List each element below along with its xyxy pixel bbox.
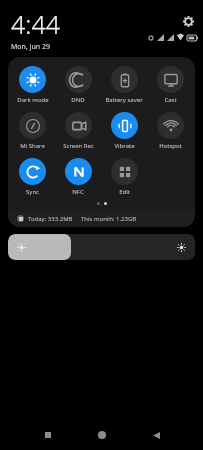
- staticText: Cast: [164, 96, 177, 104]
- button[interactable]: Sync: [10, 156, 55, 198]
- staticText: Battery saver: [105, 96, 143, 104]
- button[interactable]: Home: [87, 420, 117, 450]
- button[interactable]: Mi Share: [10, 110, 55, 152]
- staticText: NFC: [72, 188, 84, 196]
- staticText: DND: [71, 96, 85, 104]
- button[interactable]: Vibrate: [101, 110, 147, 152]
- button[interactable]: Brightness: [8, 234, 195, 260]
- button[interactable]: Screen Rec: [55, 110, 101, 152]
- button[interactable]: DND: [55, 64, 101, 106]
- button[interactable]: Dark mode: [10, 64, 55, 106]
- staticText: Mon, Jun 29: [11, 42, 50, 52]
- button[interactable]: Hotspot: [147, 110, 193, 152]
- staticText: Sync: [26, 188, 39, 196]
- staticText: 4:44: [11, 7, 60, 41]
- staticText: Dark mode: [17, 96, 49, 104]
- button[interactable]: Today: 333.2MB: [8, 210, 195, 227]
- staticText: This month: 1.23GB: [81, 215, 137, 223]
- button[interactable]: Edit: [101, 156, 147, 198]
- button[interactable]: Settings: [179, 12, 197, 30]
- staticText: Today: 333.2MB: [28, 215, 73, 223]
- staticText: Screen Rec: [63, 142, 94, 150]
- button[interactable]: NFC: [55, 156, 101, 198]
- button[interactable]: Back: [141, 420, 171, 450]
- staticText: Hotspot: [159, 142, 182, 150]
- button[interactable]: Battery saver: [101, 64, 147, 106]
- staticText: Edit: [119, 188, 130, 196]
- staticText: Vibrate: [114, 142, 135, 150]
- button[interactable]: Recents: [33, 420, 63, 450]
- staticText: Mi Share: [20, 142, 45, 150]
- button[interactable]: Cast: [147, 64, 193, 106]
